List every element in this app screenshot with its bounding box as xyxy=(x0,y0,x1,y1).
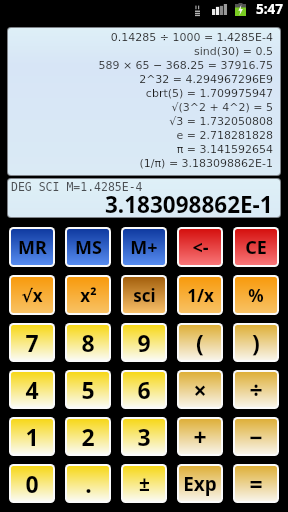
button[interactable]: 1 xyxy=(11,419,53,454)
staticText: ± xyxy=(139,471,150,497)
button[interactable]: % xyxy=(235,277,277,313)
other: Signal strength xyxy=(212,4,227,15)
button[interactable]: 4 xyxy=(11,372,53,407)
button[interactable]: Exp xyxy=(179,466,221,501)
staticText: 0.14285 ÷ 1000 = 1.4285E-4 sind(30) = 0.… xyxy=(8,31,273,170)
button[interactable]: 7 xyxy=(11,325,53,360)
staticText: Exp xyxy=(183,471,217,497)
button[interactable]: . xyxy=(67,466,109,501)
button[interactable]: − xyxy=(235,419,277,454)
staticText: ) xyxy=(252,327,260,358)
button[interactable]: × xyxy=(179,372,221,407)
button[interactable]: MR xyxy=(11,229,53,265)
button[interactable]: 6 xyxy=(123,372,165,407)
staticText: 2 xyxy=(81,421,95,452)
other: Mobile data 3G xyxy=(195,3,200,16)
staticText: 6 xyxy=(137,374,151,405)
button[interactable]: 3 xyxy=(123,419,165,454)
button[interactable]: ÷ xyxy=(235,372,277,407)
button[interactable]: ) xyxy=(235,325,277,360)
button[interactable]: 2 xyxy=(67,419,109,454)
staticText: DEG SCI M=1.4285E-4 xyxy=(11,180,143,193)
staticText: ( xyxy=(196,327,204,358)
staticText: 3 xyxy=(137,421,151,452)
staticText: sci xyxy=(133,284,156,307)
staticText: × xyxy=(193,374,207,405)
button[interactable]: MS xyxy=(67,229,109,265)
staticText: 9 xyxy=(137,327,151,358)
staticText: 5:47 xyxy=(256,0,283,18)
staticText: 5 xyxy=(81,374,95,405)
button[interactable]: 5 xyxy=(67,372,109,407)
staticText: % xyxy=(248,284,264,307)
other: Battery xyxy=(235,3,246,16)
staticText: MR xyxy=(18,235,47,260)
staticText: − xyxy=(249,421,263,452)
staticText: M+ xyxy=(130,235,158,260)
button[interactable]: ( xyxy=(179,325,221,360)
staticText: √x xyxy=(21,284,43,307)
button[interactable]: 8 xyxy=(67,325,109,360)
button[interactable]: DEG SCI M=1.4285E-4 xyxy=(8,179,280,217)
staticText: CE xyxy=(245,235,267,260)
staticText: <- xyxy=(192,235,209,260)
button[interactable]: CE xyxy=(235,229,277,265)
staticText: 7 xyxy=(25,327,39,358)
staticText: = xyxy=(249,468,263,499)
button[interactable]: 1/x xyxy=(179,277,221,313)
staticText: ÷ xyxy=(249,374,263,405)
staticText: + xyxy=(193,421,207,452)
button[interactable]: M+ xyxy=(123,229,165,265)
staticText: . xyxy=(85,468,92,499)
staticText: x² xyxy=(80,284,97,307)
button[interactable]: √x xyxy=(11,277,53,313)
button[interactable]: x² xyxy=(67,277,109,313)
staticText: 3.183098862E-1 xyxy=(105,189,273,217)
button[interactable]: = xyxy=(235,466,277,501)
staticText: 1 xyxy=(25,421,39,452)
button[interactable]: sci xyxy=(123,277,165,313)
staticText: 8 xyxy=(81,327,95,358)
button[interactable]: 0 xyxy=(11,466,53,501)
button[interactable]: + xyxy=(179,419,221,454)
button[interactable]: 9 xyxy=(123,325,165,360)
staticText: 4 xyxy=(25,374,39,405)
staticText: 1/x xyxy=(187,284,214,307)
button[interactable]: ± xyxy=(123,466,165,501)
button[interactable]: <- xyxy=(179,229,221,265)
staticText: MS xyxy=(75,235,102,260)
staticText: 0 xyxy=(25,468,39,499)
button[interactable]: 0.14285 ÷ 1000 = 1.4285E-4 sind(30) = 0.… xyxy=(8,28,280,175)
